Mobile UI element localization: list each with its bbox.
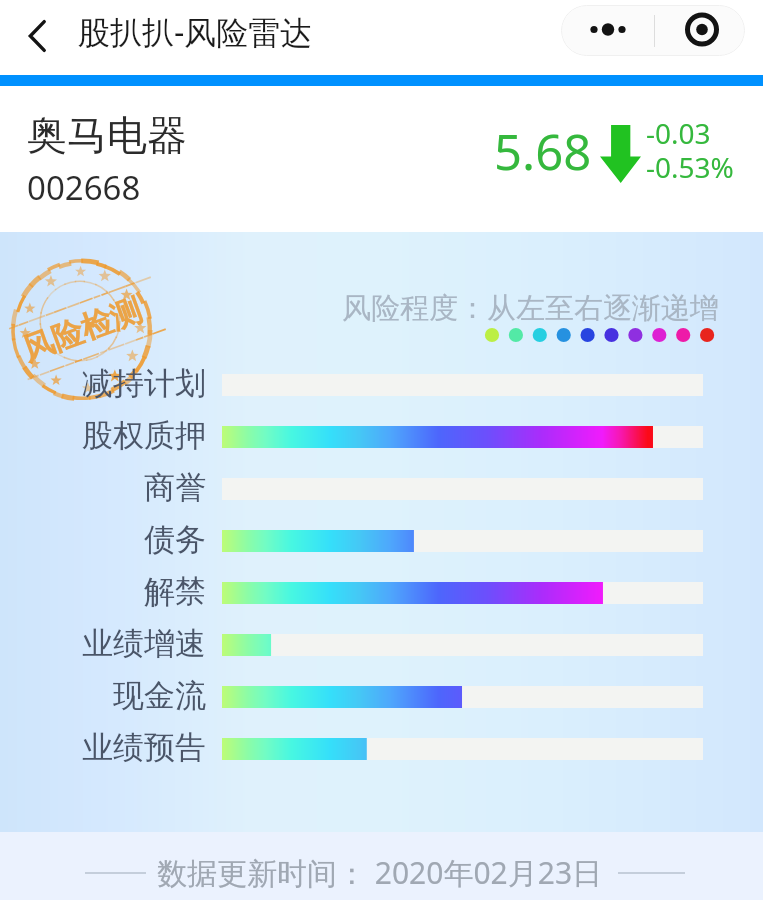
staticText: 现金流 <box>5 676 206 715</box>
button[interactable]: More options <box>561 5 654 54</box>
staticText: -0.03 <box>646 114 711 152</box>
staticText: 商誉 <box>5 468 206 507</box>
staticText: 股扒扒-风险雷达 <box>78 10 313 54</box>
button[interactable]: Close <box>655 5 745 54</box>
staticText: 5.68 <box>494 118 592 185</box>
staticText: 股权质押 <box>5 416 206 455</box>
staticText: 解禁 <box>5 572 206 611</box>
staticText: 债务 <box>5 520 206 559</box>
staticText: 002668 <box>27 165 141 210</box>
staticText: 减持计划 <box>5 364 206 403</box>
staticText: 业绩预告 <box>5 728 206 767</box>
staticText: 业绩增速 <box>5 624 206 663</box>
button[interactable]: Back <box>14 6 62 66</box>
staticText: 奥马电器 <box>27 110 187 160</box>
staticText: -0.53% <box>646 148 734 186</box>
staticText: 风险程度：从左至右逐渐递增 <box>342 290 719 327</box>
staticText: 数据更新时间： 2020年02月23日 <box>157 852 603 893</box>
